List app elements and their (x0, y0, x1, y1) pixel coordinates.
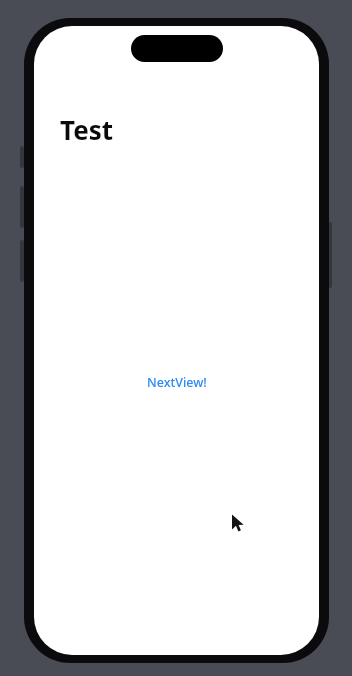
staticText: NextView! (147, 374, 207, 391)
other: Dynamic Island (131, 35, 223, 62)
button[interactable]: NextView! (141, 371, 213, 394)
staticText: Test (60, 112, 114, 147)
